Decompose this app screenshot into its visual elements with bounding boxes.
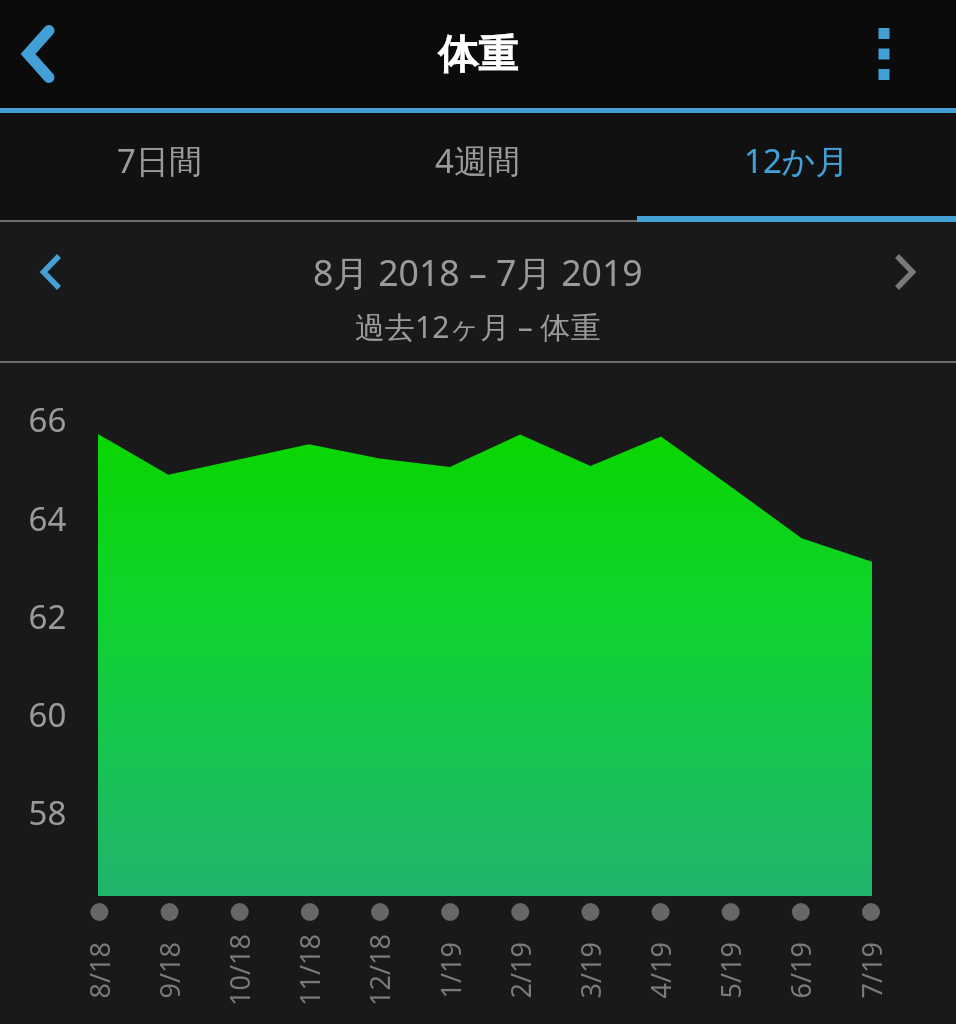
button[interactable]: Back <box>0 14 80 94</box>
button[interactable]: Previous period <box>0 248 104 296</box>
button[interactable]: More options <box>860 30 908 78</box>
staticText: 12か月 <box>744 138 849 183</box>
staticText: 8月 2018 – 7月 2019 <box>313 248 643 297</box>
staticText: 体重 <box>438 29 518 79</box>
button[interactable]: Next period <box>852 248 956 296</box>
staticText: 過去12ヶ月 – 体重 <box>355 306 601 347</box>
staticText: 4週間 <box>435 138 520 183</box>
button[interactable]: 12か月 <box>637 113 956 222</box>
button[interactable]: 4週間 <box>318 113 637 222</box>
button[interactable]: 7日間 <box>0 113 318 222</box>
staticText: 7日間 <box>117 138 202 183</box>
